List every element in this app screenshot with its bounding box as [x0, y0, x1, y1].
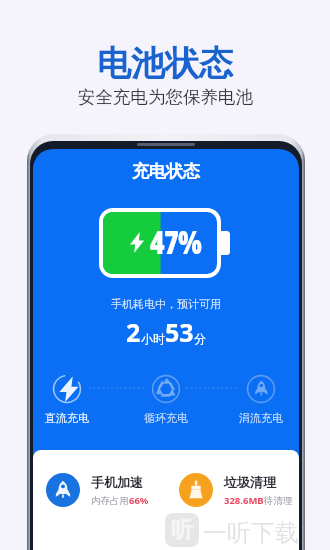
staticText: 充电状态 — [132, 161, 200, 182]
staticText: 一听下载 — [203, 518, 299, 548]
button[interactable]: 涓流充电 — [237, 373, 285, 425]
staticText: 电池状态 — [97, 42, 233, 85]
staticText: 328.6MB待清理 — [224, 494, 293, 507]
staticText: 53 — [165, 315, 194, 349]
button[interactable]: 垃圾清理 — [179, 473, 299, 507]
staticText: 分 — [194, 331, 206, 346]
button[interactable]: 手机加速 — [46, 473, 170, 507]
staticText: 循环充电 — [144, 411, 188, 425]
staticText: 垃圾清理 — [224, 474, 276, 490]
staticText: 听 — [171, 516, 193, 544]
staticText: 涓流充电 — [239, 411, 283, 425]
staticText: 小时 — [141, 331, 165, 346]
staticText: 手机加速 — [91, 474, 143, 490]
staticText: 手机耗电中，预计可用 — [111, 297, 221, 311]
button[interactable]: 循环充电 — [142, 373, 190, 425]
staticText: 2 — [126, 315, 141, 349]
staticText: 直流充电 — [45, 411, 89, 425]
button[interactable]: 直流充电 — [43, 373, 91, 425]
staticText: 内存占用66% — [91, 494, 149, 507]
staticText: 安全充电为您保养电池 — [78, 86, 253, 108]
staticText: 47% — [150, 221, 202, 263]
